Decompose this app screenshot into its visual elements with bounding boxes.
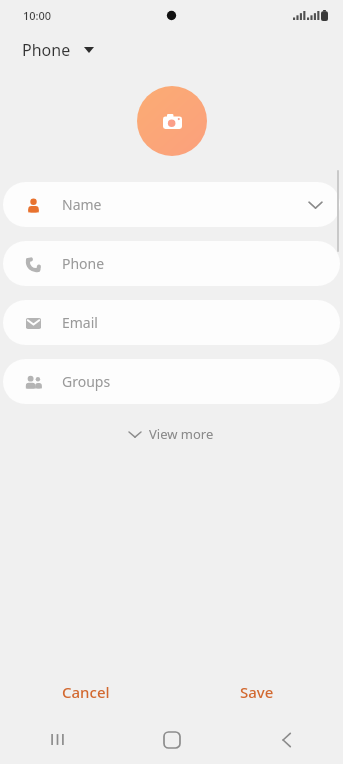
staticText: Name xyxy=(62,195,102,214)
staticText: Email xyxy=(62,313,98,332)
staticText: Groups xyxy=(62,372,111,391)
button[interactable]: Email xyxy=(3,300,340,345)
button[interactable]: Save xyxy=(171,669,343,715)
button[interactable]: Phone xyxy=(3,241,340,286)
staticText: Save xyxy=(240,682,274,702)
button[interactable]: Back xyxy=(229,715,343,764)
staticText: Phone xyxy=(22,39,71,61)
staticText: Cancel xyxy=(62,682,110,702)
button[interactable]: Recents xyxy=(0,715,115,764)
staticText: View more xyxy=(149,425,214,443)
button[interactable]: Phone xyxy=(0,30,343,70)
button[interactable]: Name xyxy=(3,182,340,227)
staticText: 10:00 xyxy=(23,8,52,23)
staticText: Phone xyxy=(62,254,105,273)
button[interactable]: View more xyxy=(117,419,226,449)
button[interactable]: Cancel xyxy=(0,669,171,715)
button[interactable]: Groups xyxy=(3,359,340,404)
button[interactable]: Home xyxy=(115,715,229,764)
button[interactable]: Add contact photo xyxy=(137,86,207,156)
